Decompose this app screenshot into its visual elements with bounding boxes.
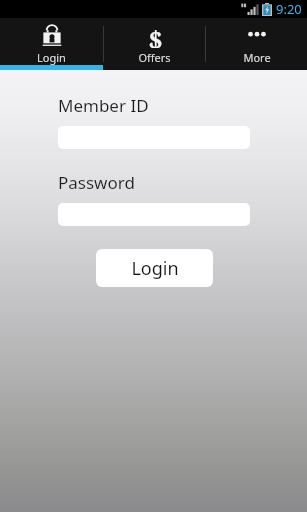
staticText: 9:20 — [276, 0, 302, 18]
staticText: Login — [37, 50, 66, 65]
staticText: More — [243, 50, 271, 65]
staticText: Offers — [138, 50, 171, 65]
button[interactable]: Login — [0, 18, 103, 70]
button[interactable]: More — [206, 18, 307, 70]
other: Login — [40, 22, 64, 48]
staticText: Password — [58, 171, 135, 194]
other: Offers — [143, 22, 167, 48]
other: More — [245, 22, 269, 48]
button[interactable]: Login — [96, 249, 213, 287]
staticText: $ — [148, 22, 163, 48]
button[interactable]: Offers — [104, 18, 205, 70]
staticText: Member ID — [58, 94, 149, 117]
staticText: Login — [131, 256, 179, 281]
